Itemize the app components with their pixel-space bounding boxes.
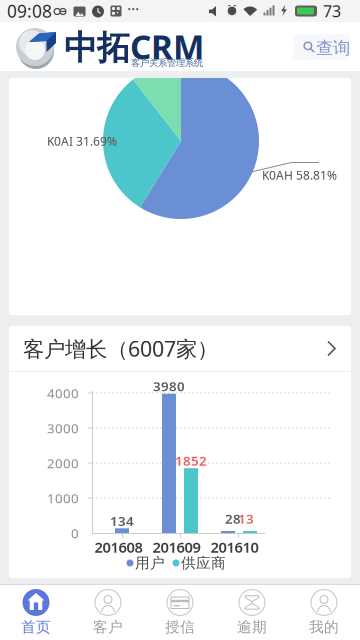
staticText: 4000 <box>47 384 79 402</box>
staticText: 用户 <box>135 554 165 572</box>
staticText: 我的 <box>309 618 339 636</box>
staticText: 首页 <box>21 618 51 636</box>
button[interactable]: 客户 <box>72 585 144 640</box>
staticText: 客户增长（6007家） <box>23 334 218 363</box>
staticText: 201610 <box>210 537 258 557</box>
button[interactable]: 首页 <box>0 585 72 640</box>
staticText: 逾期 <box>237 618 267 636</box>
staticText: ··· <box>127 0 139 20</box>
staticText: K0AI 31.69% <box>47 133 117 149</box>
staticText: 客户关系管理系统 <box>131 57 203 69</box>
staticText: 查询 <box>316 37 350 59</box>
staticText: 201608 <box>94 537 142 557</box>
staticText: 1852 <box>175 452 207 469</box>
staticText: 201609 <box>152 537 200 557</box>
button[interactable]: 客户增长（6007家） <box>9 326 351 371</box>
staticText: 28 <box>225 510 241 527</box>
staticText: 授信 <box>165 618 195 636</box>
staticText: 134 <box>110 512 134 530</box>
staticText: 客户 <box>93 618 123 636</box>
staticText: 73 <box>323 0 341 22</box>
staticText: 3000 <box>47 419 79 437</box>
staticText: 2000 <box>47 454 79 472</box>
staticText: 09:08 <box>7 0 52 22</box>
staticText: 13 <box>238 510 254 527</box>
staticText: 供应商 <box>181 554 226 572</box>
button[interactable]: 我的 <box>288 585 360 640</box>
staticText: 0 <box>71 524 79 542</box>
staticText: 1000 <box>47 489 79 507</box>
button[interactable]: 查询 <box>293 34 350 60</box>
button[interactable]: 逾期 <box>216 585 288 640</box>
staticText: 中拓CRM <box>64 24 204 69</box>
staticText: K0AH 58.81% <box>262 167 337 183</box>
button[interactable]: 授信 <box>144 585 216 640</box>
staticText: 3980 <box>153 377 185 395</box>
